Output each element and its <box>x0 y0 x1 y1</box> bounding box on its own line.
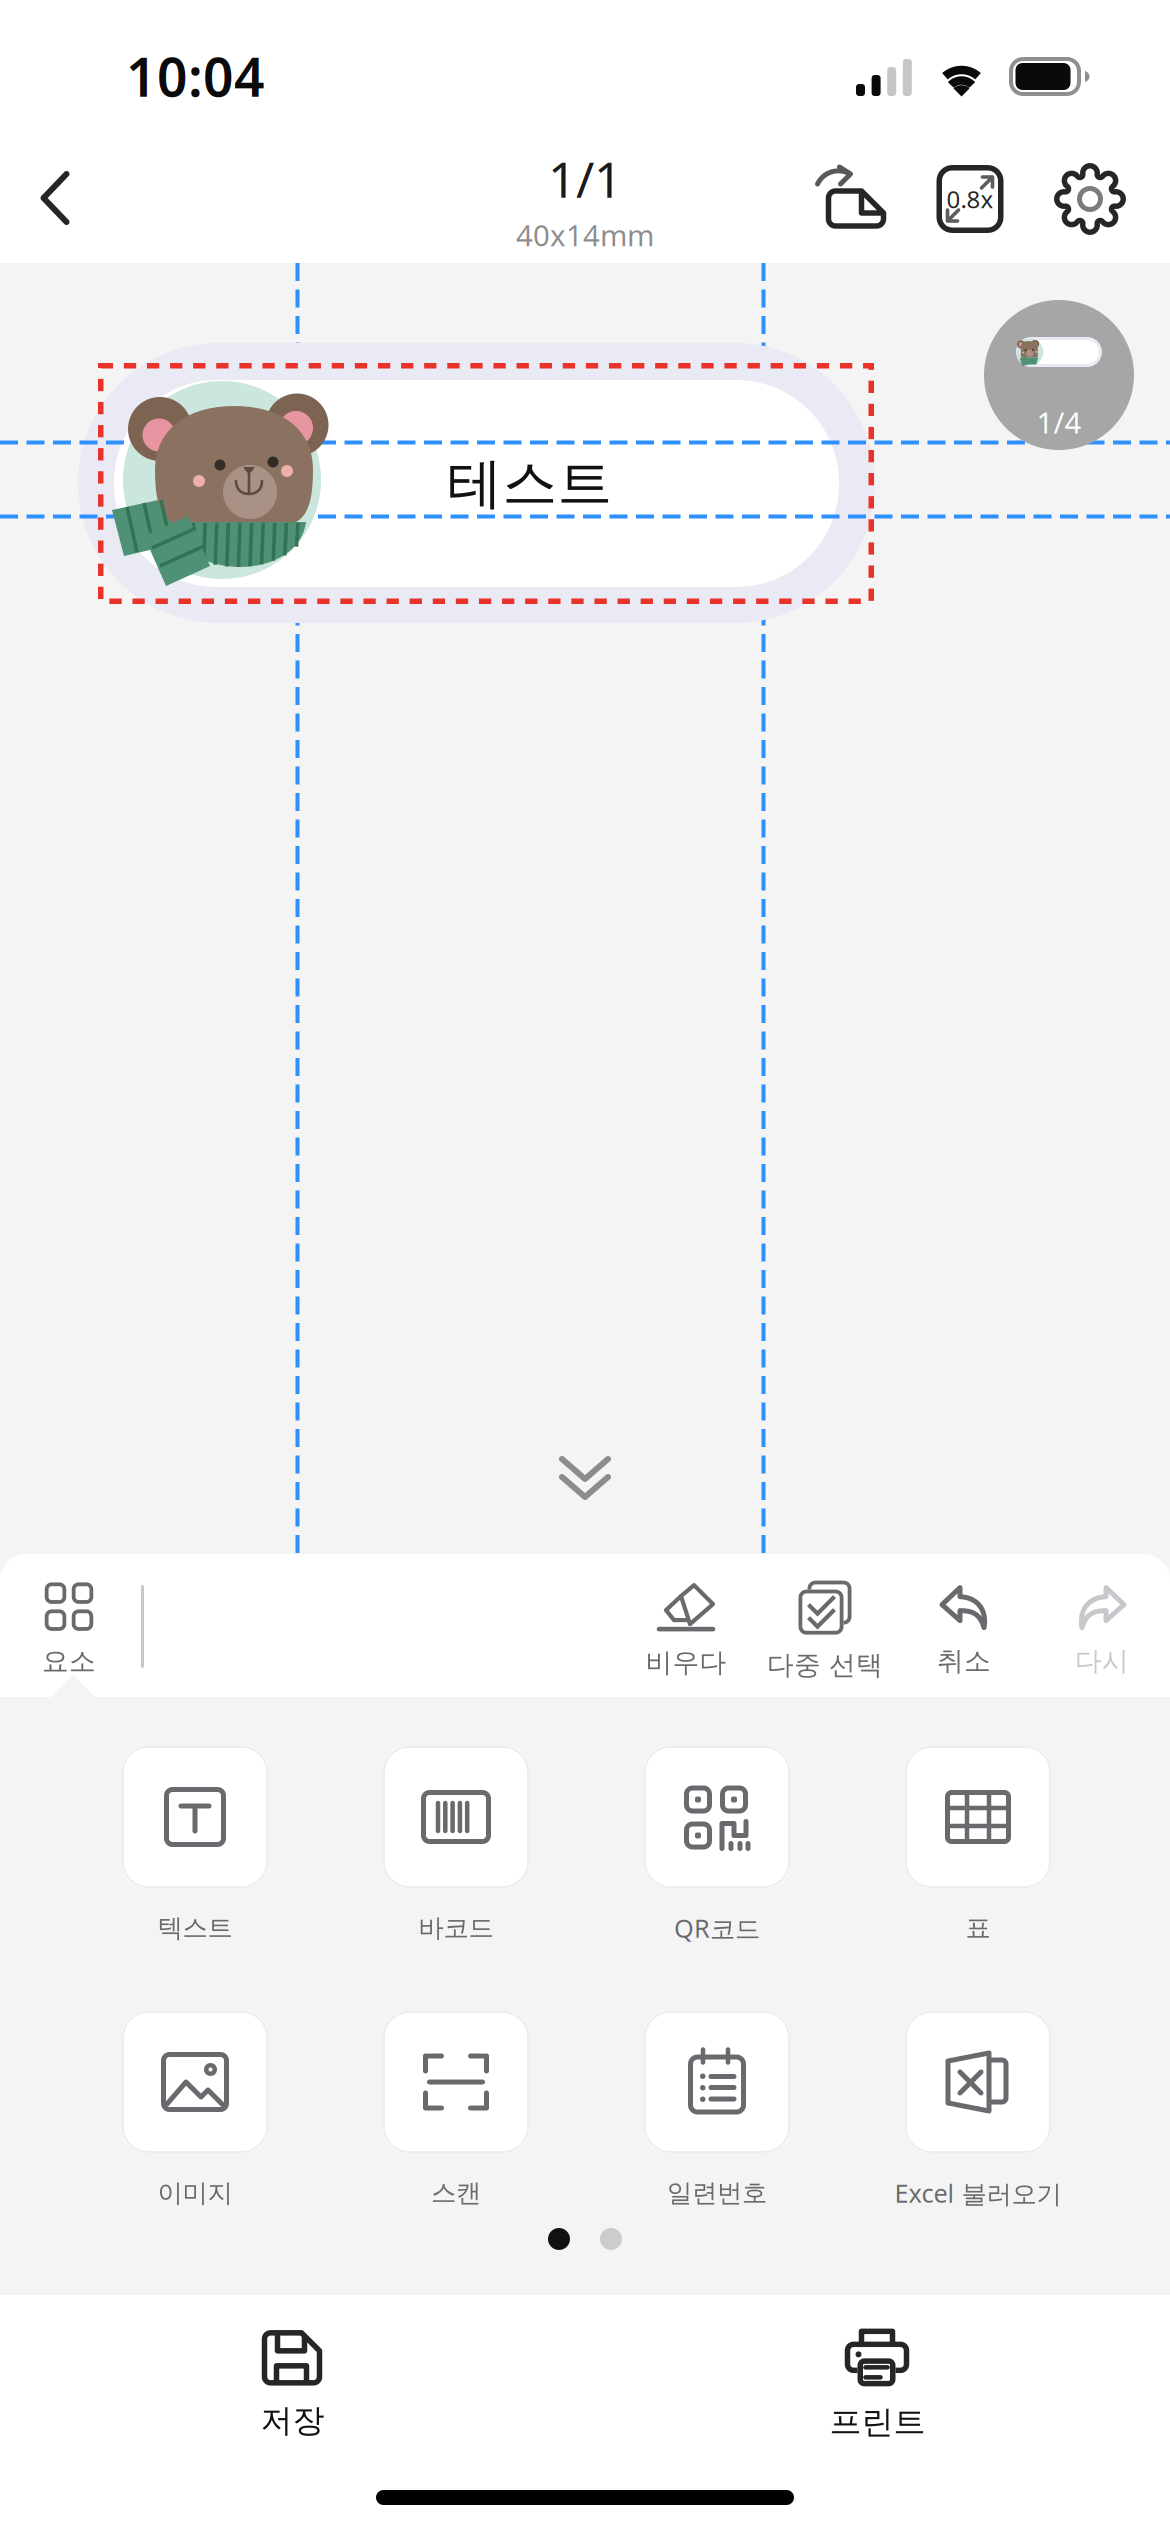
staticText: 40x14mm <box>516 215 654 254</box>
staticText: 일련번호 <box>667 2177 767 2208</box>
staticText: 요소 <box>42 1645 96 1678</box>
staticText: 10:04 <box>126 41 265 111</box>
staticText: QR코드 <box>674 1911 760 1945</box>
staticText: 다중 선택 <box>767 1649 883 1681</box>
button[interactable]: 비우다 <box>591 1576 781 1686</box>
staticText: 스캔 <box>431 2177 481 2208</box>
button[interactable]: 프린트 <box>585 2320 1170 2450</box>
button[interactable]: Collapse canvas <box>525 1430 645 1526</box>
button[interactable]: Settings <box>1045 152 1135 246</box>
staticText: 프린트 <box>829 2402 925 2442</box>
button[interactable]: 취소 <box>869 1576 1059 1686</box>
staticText: 1/4 <box>1036 402 1081 441</box>
staticText: 취소 <box>937 1645 991 1677</box>
staticText: 텍스트 <box>157 1912 232 1943</box>
staticText: 표 <box>965 1912 990 1943</box>
staticText: 테스트 <box>447 450 612 517</box>
button[interactable] <box>383 1746 529 1888</box>
button[interactable]: 다시 <box>1007 1576 1170 1686</box>
staticText: 비우다 <box>645 1646 726 1679</box>
staticText: 저장 <box>260 2401 324 2440</box>
staticText: 0.8x <box>946 183 993 215</box>
button[interactable]: 요소 <box>0 1574 138 1686</box>
staticText: 이미지 <box>157 2177 232 2208</box>
button[interactable] <box>905 1746 1051 1888</box>
button[interactable]: 다중 선택 <box>730 1576 920 1686</box>
button[interactable]: Rotate label <box>815 163 887 231</box>
button[interactable]: Page 1 of 4 <box>984 300 1134 450</box>
button[interactable] <box>122 2011 268 2153</box>
staticText: 바코드 <box>418 1912 493 1943</box>
button[interactable]: Back <box>0 140 110 256</box>
button[interactable]: 저장 <box>0 2320 585 2450</box>
staticText: 다시 <box>1075 1645 1129 1677</box>
staticText: Excel 불러오기 <box>894 2176 1061 2210</box>
button[interactable]: Zoom level <box>926 152 1014 246</box>
button[interactable] <box>383 2011 529 2153</box>
button[interactable] <box>644 1746 790 1888</box>
staticText: 1/1 <box>548 146 622 211</box>
button[interactable] <box>644 2011 790 2153</box>
button[interactable] <box>122 1746 268 1888</box>
button[interactable] <box>905 2011 1051 2153</box>
